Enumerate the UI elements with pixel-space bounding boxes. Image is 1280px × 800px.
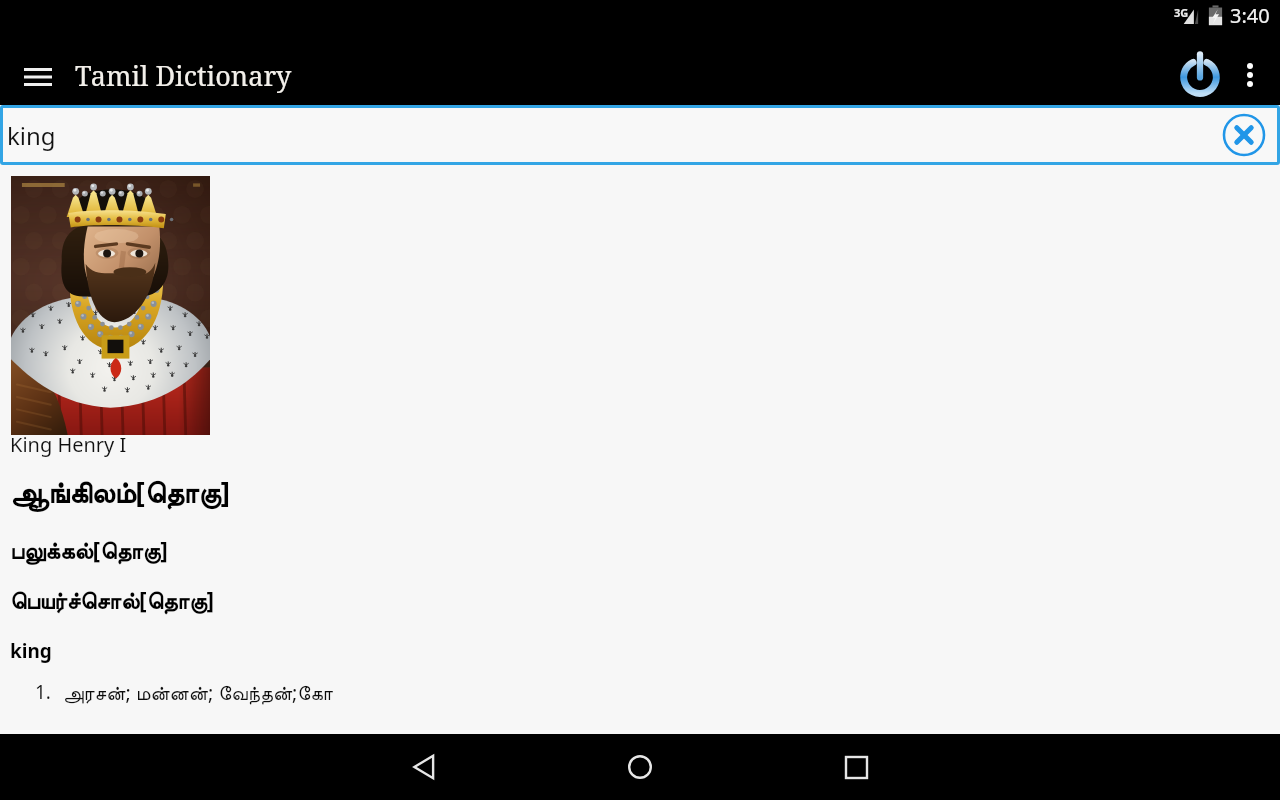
staticText: king (7, 119, 56, 152)
button[interactable]: More options (1232, 52, 1268, 98)
staticText: 3G (1174, 5, 1189, 20)
staticText: பலுக்கல்[தொகு] (10, 534, 168, 565)
staticText: அரசன்; மன்னன்; வேந்தன்;கோ (63, 679, 333, 706)
staticText: Tamil Dictionary (75, 57, 292, 94)
button[interactable]: Search field (3, 108, 1277, 162)
staticText: ஆங்கிலம்[தொகு] (10, 472, 231, 511)
button[interactable]: Power (1174, 49, 1226, 101)
button[interactable]: Home (592, 734, 688, 800)
staticText: பெயர்ச்சொல்[தொகு] (10, 584, 215, 615)
staticText: king (10, 638, 52, 664)
button[interactable]: Open navigation drawer (14, 54, 62, 100)
staticText: King Henry I (10, 431, 127, 458)
button[interactable]: Clear search (1221, 112, 1267, 158)
button[interactable]: Back (376, 734, 472, 800)
button[interactable]: Recent apps (808, 734, 904, 800)
staticText: 3:40 (1230, 2, 1270, 29)
staticText: 1. (35, 679, 51, 705)
